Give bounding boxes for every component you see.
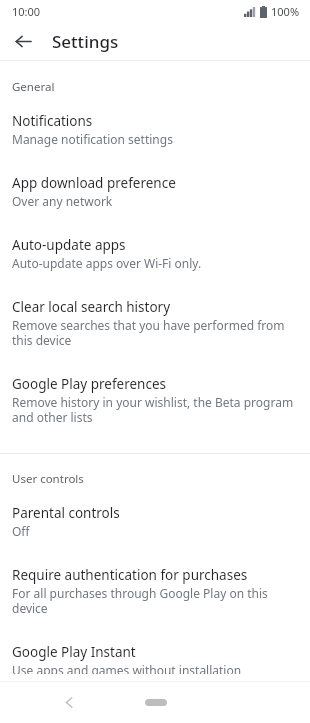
staticText: Auto-update apps xyxy=(12,236,126,254)
button[interactable]: Clear local search history xyxy=(0,291,310,355)
staticText: User controls xyxy=(12,471,84,487)
button[interactable]: Parental controls xyxy=(0,497,310,546)
staticText: Auto-update apps over Wi-Fi only. xyxy=(12,255,202,271)
staticText: Manage notification settings xyxy=(12,131,173,147)
staticText: Notifications xyxy=(12,112,93,130)
button[interactable]: Notifications xyxy=(0,105,310,154)
staticText: Require authentication for purchases xyxy=(12,566,248,584)
button[interactable]: Back xyxy=(9,27,37,55)
button[interactable]: Require authentication for purchases xyxy=(0,559,310,623)
staticText: Google Play preferences xyxy=(12,375,166,393)
staticText: 10:00 xyxy=(12,4,41,19)
staticText: Over any network xyxy=(12,193,113,209)
button[interactable]: App download preference xyxy=(0,167,310,216)
button[interactable]: Back xyxy=(54,687,84,717)
staticText: Clear local search history xyxy=(12,298,171,316)
button[interactable]: Google Play Instant xyxy=(0,636,310,681)
staticText: Google Play Instant xyxy=(12,643,136,661)
staticText: App download preference xyxy=(12,174,176,192)
staticText: General xyxy=(12,79,55,95)
staticText: Remove history in your wishlist, the Bet… xyxy=(12,394,296,425)
button[interactable]: Google Play preferences xyxy=(0,368,310,432)
staticText: Use apps and games without installation xyxy=(12,662,242,674)
staticText: 100% xyxy=(271,4,300,19)
staticText: Settings xyxy=(52,30,119,53)
button[interactable]: Auto-update apps xyxy=(0,229,310,278)
staticText: Parental controls xyxy=(12,504,120,522)
staticText: Off xyxy=(12,523,30,539)
staticText: Remove searches that you have performed … xyxy=(12,317,296,348)
staticText: For all purchases through Google Play on… xyxy=(12,585,296,616)
button[interactable]: Home xyxy=(139,694,173,710)
